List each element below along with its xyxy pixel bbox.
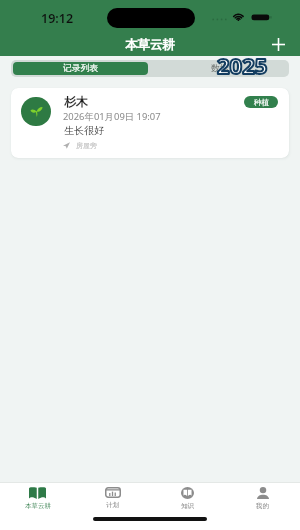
staticText: 2025 xyxy=(217,50,268,80)
staticText: 本草云耕 xyxy=(25,502,51,510)
staticText: 19:12 xyxy=(41,10,74,27)
staticText: 我的 xyxy=(256,502,269,510)
button[interactable]: Add record xyxy=(265,31,291,57)
button[interactable]: 杉木 xyxy=(11,88,289,158)
button[interactable]: 本草云耕 xyxy=(0,483,75,513)
staticText: 记录列表 xyxy=(63,63,99,74)
staticText: 生长很好 xyxy=(64,124,104,137)
staticText: 2025 xyxy=(217,50,268,80)
staticText: 房屋旁 xyxy=(76,141,97,150)
button[interactable]: 记录列表 xyxy=(13,62,148,75)
staticText: 本草云耕 xyxy=(125,37,175,53)
staticText: 种植 xyxy=(254,98,269,107)
staticText: 数据 xyxy=(211,63,229,74)
staticText: 杉木 xyxy=(64,94,88,109)
staticText: 计划 xyxy=(106,501,119,509)
button[interactable]: 知识 xyxy=(150,483,225,513)
button[interactable]: 计划 xyxy=(75,483,150,513)
staticText: 2026年01月09日 19:07 xyxy=(63,110,161,123)
button[interactable]: 我的 xyxy=(225,483,300,513)
staticText: 知识 xyxy=(181,502,194,510)
button[interactable]: 数据 xyxy=(150,60,289,77)
